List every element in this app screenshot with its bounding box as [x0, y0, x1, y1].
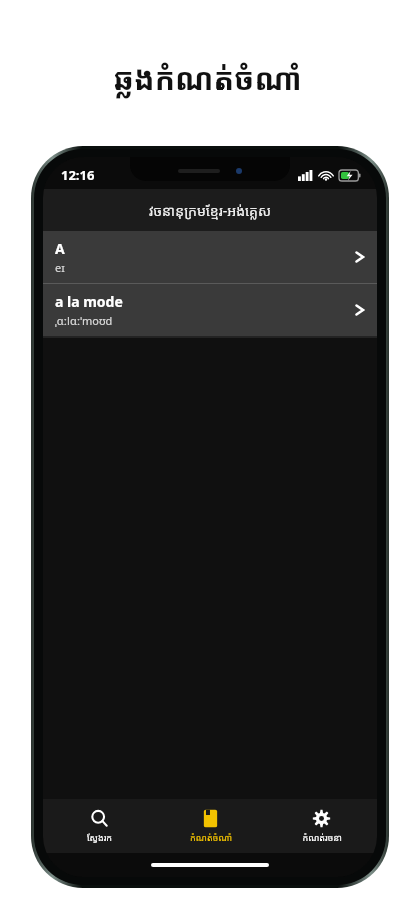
button[interactable]: a la mode: [43, 284, 377, 336]
button[interactable]: Settings: [266, 803, 377, 849]
staticText: 12:16: [61, 166, 95, 184]
staticText: ស្វែងរក: [87, 831, 112, 843]
staticText: eɪ: [55, 260, 65, 275]
button[interactable]: A: [43, 231, 377, 283]
staticText: វចនានុក្រមខ្មែរ-អង់គ្លេស: [149, 201, 271, 220]
staticText: កំណត់ចំណាំ: [190, 831, 232, 843]
staticText: a la mode: [55, 292, 123, 311]
button[interactable]: Bookmarks: [155, 803, 266, 849]
staticText: ˌɑːlɑːˈmoʊd: [55, 313, 113, 328]
button[interactable]: Search: [43, 803, 155, 849]
staticText: កំណត់រចនា: [302, 831, 342, 843]
staticText: A: [55, 239, 65, 258]
staticText: ឆ្លងកំណត់ចំណាំ: [113, 58, 302, 99]
